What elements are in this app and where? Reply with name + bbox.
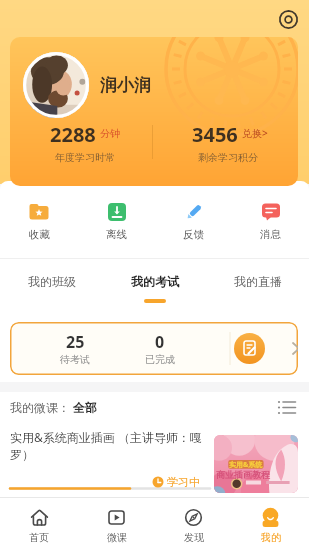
- button[interactable]: 消息: [232, 198, 309, 246]
- button[interactable]: 反馈: [155, 198, 232, 246]
- button[interactable]: 我的考试: [103, 270, 206, 306]
- staticText: 学习中: [167, 475, 200, 489]
- button[interactable]: 我的直播: [206, 270, 309, 306]
- staticText: 实用&系统商业插画 （主讲导师：嘎: [10, 429, 202, 445]
- staticText: 罗）: [10, 447, 34, 462]
- button[interactable]: [277, 400, 297, 415]
- staticText: 首页: [29, 531, 49, 544]
- button[interactable]: 首页: [0, 498, 78, 550]
- staticText: 待考试: [60, 353, 90, 366]
- button[interactable]: 收藏: [0, 198, 78, 246]
- staticText: 我的: [261, 531, 281, 544]
- staticText: 收藏: [29, 228, 50, 241]
- staticText: 我的微课：: [10, 400, 70, 415]
- button[interactable]: 离线: [78, 198, 155, 246]
- staticText: 0: [155, 331, 165, 351]
- button[interactable]: 实用&系统商业插画 （主讲导师：嘎: [0, 425, 309, 497]
- staticText: 兑换>: [242, 126, 268, 140]
- staticText: 年度学习时常: [55, 151, 115, 164]
- staticText: 25: [66, 331, 85, 351]
- button[interactable]: 25: [10, 322, 298, 375]
- staticText: 3456: [192, 121, 238, 145]
- staticText: 剩余学习积分: [198, 151, 258, 164]
- staticText: 润小润: [100, 75, 151, 96]
- staticText: 实用&系统: [229, 460, 263, 469]
- staticText: 消息: [260, 228, 281, 241]
- button[interactable]: 发现: [155, 498, 232, 550]
- staticText: 分钟: [100, 127, 120, 140]
- staticText: 微课: [107, 531, 127, 544]
- button[interactable]: 我的班级: [0, 270, 103, 306]
- staticText: 我的班级: [28, 274, 76, 289]
- staticText: 全部: [73, 400, 97, 415]
- staticText: 商业插画教程: [216, 469, 270, 480]
- staticText: 发现: [184, 531, 204, 544]
- staticText: 反馈: [183, 228, 204, 241]
- staticText: 已完成: [145, 353, 175, 366]
- button[interactable]: 微课: [78, 498, 155, 550]
- staticText: 我的考试: [131, 274, 179, 289]
- staticText: 2288: [50, 121, 96, 145]
- staticText: 我的直播: [234, 274, 282, 289]
- staticText: 离线: [106, 228, 127, 241]
- button[interactable]: 我的: [232, 498, 309, 550]
- button[interactable]: [277, 8, 300, 31]
